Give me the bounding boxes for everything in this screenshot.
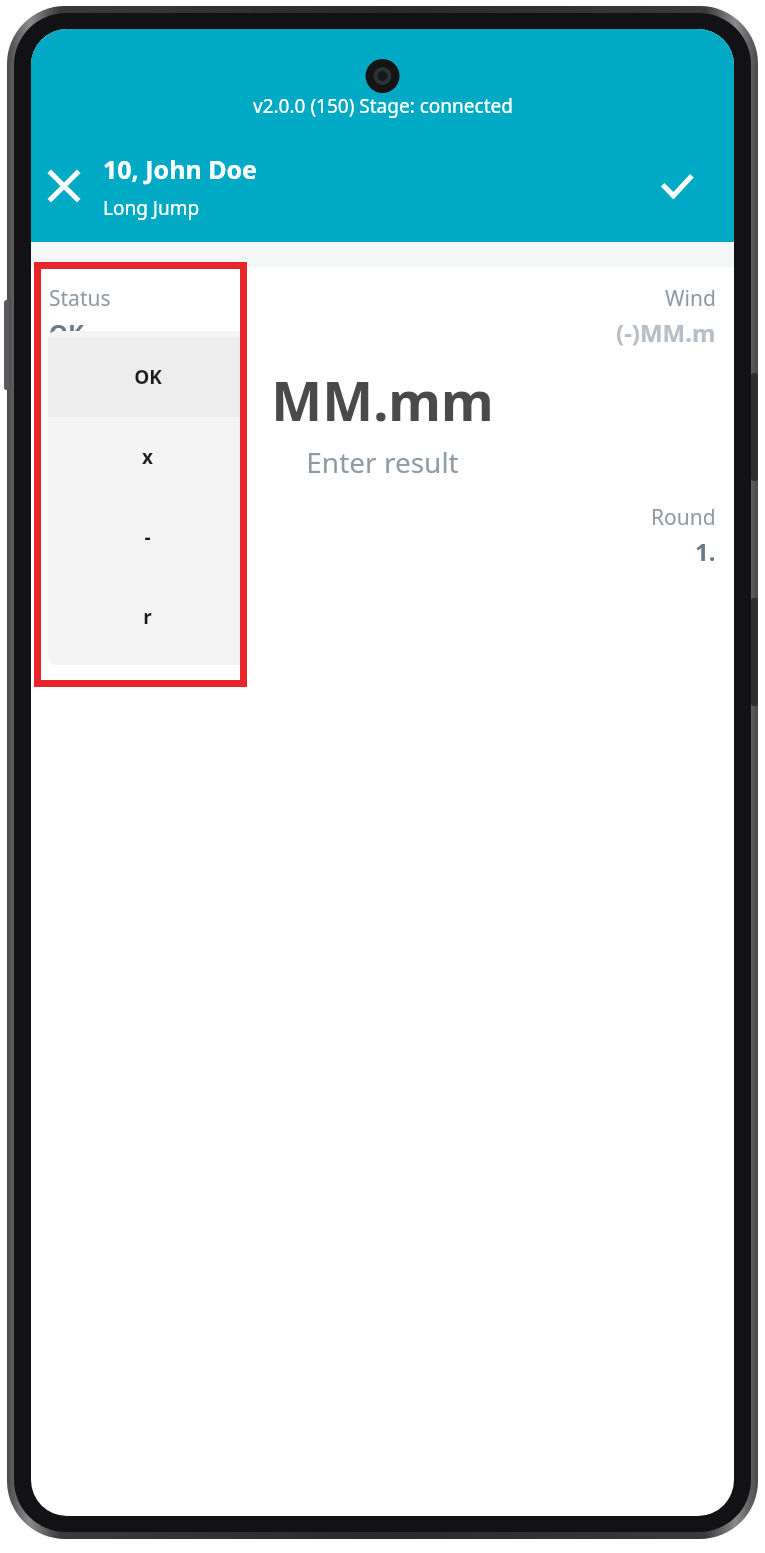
staticText: r — [143, 604, 152, 630]
staticText: Wind — [665, 284, 716, 313]
staticText: 10, John Doe — [103, 152, 257, 186]
staticText: Status — [49, 284, 111, 313]
button[interactable]: Close — [31, 153, 97, 219]
staticText: Long Jump — [103, 195, 200, 221]
staticText: Enter result — [306, 443, 459, 481]
button[interactable]: r — [48, 577, 247, 657]
button[interactable]: x — [48, 417, 247, 497]
staticText: - — [144, 524, 151, 550]
button[interactable]: Confirm — [644, 153, 710, 219]
staticText: 1. — [695, 535, 716, 568]
staticText: MM.mm — [271, 363, 494, 437]
button[interactable]: - — [48, 497, 247, 577]
staticText: v2.0.0 (150) Stage: connected — [253, 93, 513, 119]
button[interactable]: OK — [48, 337, 247, 417]
staticText: x — [142, 444, 153, 470]
staticText: (-)MM.m — [616, 316, 716, 349]
staticText: Round — [651, 503, 716, 532]
button[interactable]: MM.mm — [31, 363, 734, 481]
staticText: OK — [134, 364, 162, 390]
staticText: OK — [49, 316, 84, 349]
